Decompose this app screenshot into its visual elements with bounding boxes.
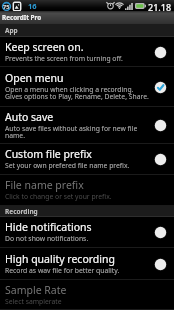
staticText: 21.18 [148, 1, 172, 12]
staticText: Do not show notifications. [5, 234, 89, 243]
staticText: Prevents the screen from turning off. [5, 54, 123, 63]
other: Unchecked [154, 258, 167, 271]
staticText: Sample Rate [5, 283, 67, 297]
staticText: 16 [28, 1, 37, 11]
staticText: RecordIt Pro [2, 13, 42, 22]
button[interactable]: Auto save [0, 107, 174, 144]
staticText: App [5, 26, 18, 35]
other: Unchecked [154, 153, 167, 166]
button[interactable]: File name prefix [0, 175, 174, 206]
button[interactable]: High quality recording [0, 248, 174, 280]
staticText: Set your own prefered file name prefix. [5, 161, 130, 170]
staticText: Hide notifications [5, 220, 92, 234]
staticText: Open a menu when clicking a recording. G… [5, 85, 149, 101]
button[interactable]: Open menu [0, 67, 174, 107]
button[interactable]: Sample Rate [0, 280, 174, 310]
button[interactable]: Keep screen on. [0, 37, 174, 67]
staticText: Click to change or set your prefix. [5, 192, 112, 201]
staticText: High quality recording [5, 252, 115, 266]
staticText: Select samplerate [5, 297, 62, 306]
staticText: Open menu [5, 71, 64, 85]
staticText: Custom file prefix [5, 147, 92, 161]
staticText: File name prefix [5, 178, 84, 192]
staticText: 75 [3, 3, 10, 10]
other: Unchecked [154, 119, 167, 132]
staticText: Recording [5, 207, 38, 216]
staticText: Record as wav file for better quality. [5, 266, 120, 275]
staticText: Keep screen on. [5, 40, 84, 54]
staticText: Auto save [5, 110, 54, 124]
other: Checked [154, 81, 167, 94]
staticText: Auto save files without asking for new f… [5, 124, 138, 140]
other: Unchecked [154, 46, 167, 59]
other: Unchecked [154, 226, 167, 239]
button[interactable]: Hide notifications [0, 217, 174, 248]
button[interactable]: Custom file prefix [0, 144, 174, 175]
